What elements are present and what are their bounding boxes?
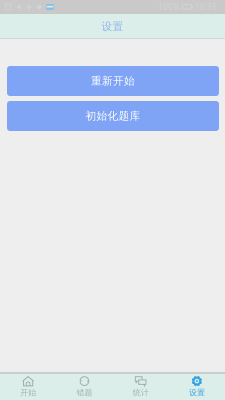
staticText: 设置 <box>101 20 123 33</box>
staticText: 初始化题库 <box>85 109 140 122</box>
button[interactable]: 初始化题库 <box>7 101 219 131</box>
button[interactable]: 开始 <box>0 372 56 400</box>
staticText: 开始 <box>20 388 36 397</box>
button[interactable]: 重新开始 <box>7 66 219 96</box>
staticText: 错题 <box>76 388 92 397</box>
button[interactable]: 设置 <box>169 372 225 400</box>
button[interactable]: 统计 <box>112 372 169 400</box>
staticText: 设置 <box>189 388 205 397</box>
staticText: 统计 <box>133 388 149 397</box>
button[interactable]: 错题 <box>56 372 112 400</box>
staticText: 重新开始 <box>91 74 135 87</box>
